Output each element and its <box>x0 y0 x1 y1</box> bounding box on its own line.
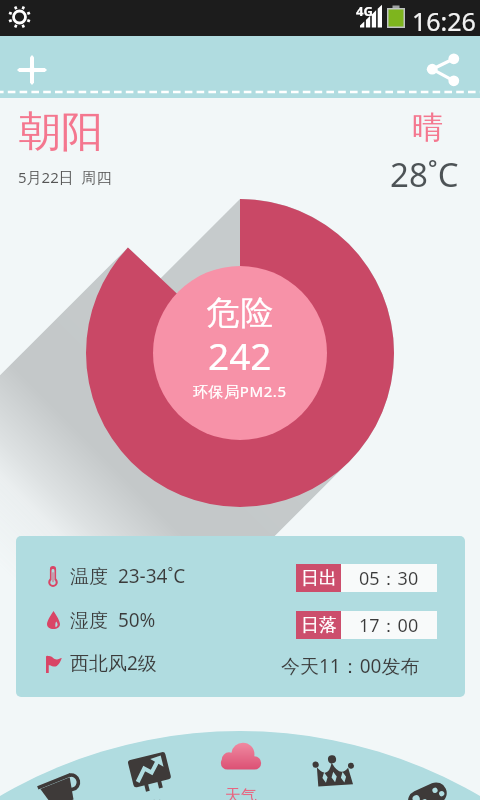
staticText: 242 <box>208 330 272 380</box>
staticText: 湿度 50% <box>70 607 156 633</box>
staticText: 朝阳 <box>19 106 103 159</box>
staticText: 05：30 <box>359 566 419 591</box>
button[interactable]: Share <box>419 46 467 94</box>
button[interactable]: Weather <box>196 736 286 800</box>
staticText: 日落 <box>301 614 337 637</box>
button[interactable]: Games <box>382 772 472 800</box>
button[interactable]: Deals <box>289 752 379 800</box>
staticText: 日出 <box>301 567 337 590</box>
staticText: 今天11：00发布 <box>281 653 420 679</box>
staticText: 16:26 <box>412 4 476 38</box>
staticText: 5月22日 周四 <box>18 167 112 187</box>
button[interactable]: Add city <box>8 46 56 94</box>
staticText: 西北风2级 <box>70 650 157 676</box>
staticText: 4G <box>356 2 373 20</box>
staticText: 温度 23-34˚C <box>70 563 186 589</box>
button[interactable]: Trends <box>105 748 195 800</box>
staticText: 危险 <box>206 292 274 334</box>
staticText: 28˚C <box>390 152 459 197</box>
staticText: 环保局PM2.5 <box>193 381 287 401</box>
staticText: 晴 <box>412 108 443 147</box>
staticText: 天气 <box>225 786 257 800</box>
staticText: 17：00 <box>359 613 419 638</box>
button[interactable]: Coffee <box>16 765 106 800</box>
